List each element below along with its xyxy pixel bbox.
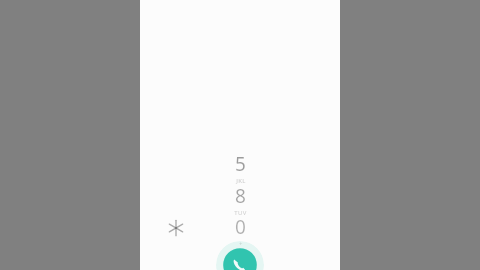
button[interactable]: Star xyxy=(154,206,198,250)
button[interactable]: 5 xyxy=(214,151,266,185)
staticText: 0 xyxy=(235,214,246,240)
staticText: + xyxy=(239,240,243,248)
staticText: 8 xyxy=(235,183,246,209)
button[interactable]: Call xyxy=(216,241,264,270)
staticText: 5 xyxy=(235,151,246,177)
staticText: JKL xyxy=(236,177,246,185)
staticText: TUV xyxy=(234,209,247,217)
button[interactable]: 8 xyxy=(214,183,266,217)
button[interactable]: 0 xyxy=(214,214,266,248)
